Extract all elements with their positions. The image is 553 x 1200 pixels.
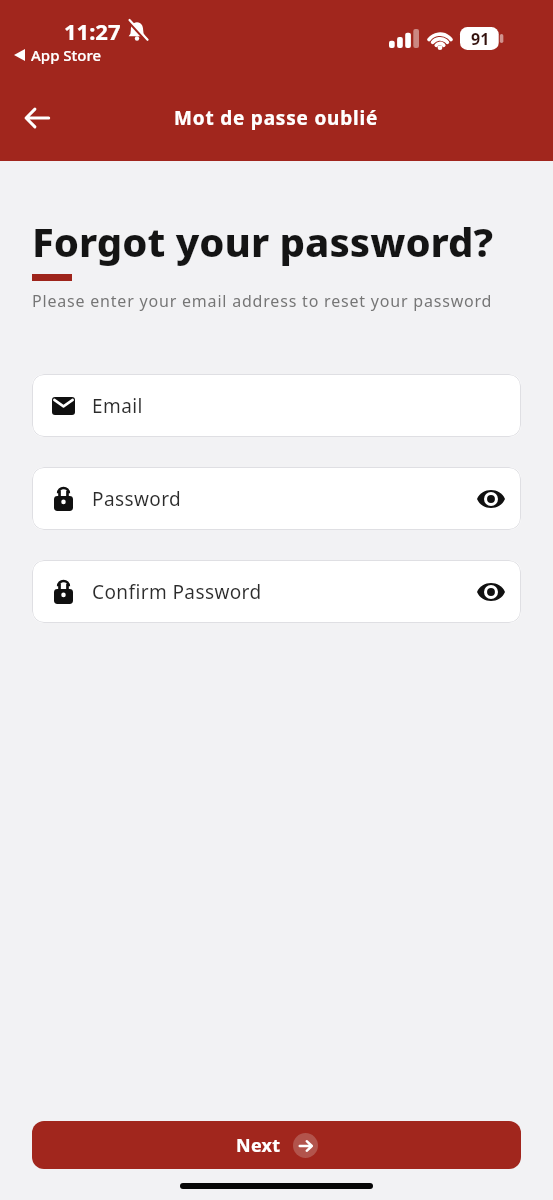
staticText: Mot de passe oublié xyxy=(174,105,379,131)
button[interactable]: Confirm Password xyxy=(32,560,521,623)
staticText: Password xyxy=(92,486,182,512)
button[interactable]: Password xyxy=(32,467,521,530)
staticText: App Store xyxy=(31,45,102,65)
staticText: 91 xyxy=(471,28,490,50)
staticText: Forgot your password? xyxy=(32,214,494,268)
staticText: 11:27 xyxy=(64,16,121,46)
staticText: Next xyxy=(236,1133,281,1158)
staticText: Email xyxy=(92,393,143,419)
button[interactable]: Next xyxy=(32,1121,521,1169)
button[interactable] xyxy=(18,99,56,137)
staticText: Please enter your email address to reset… xyxy=(32,290,493,312)
staticText: Confirm Password xyxy=(92,579,262,605)
button[interactable]: Email xyxy=(32,374,521,437)
